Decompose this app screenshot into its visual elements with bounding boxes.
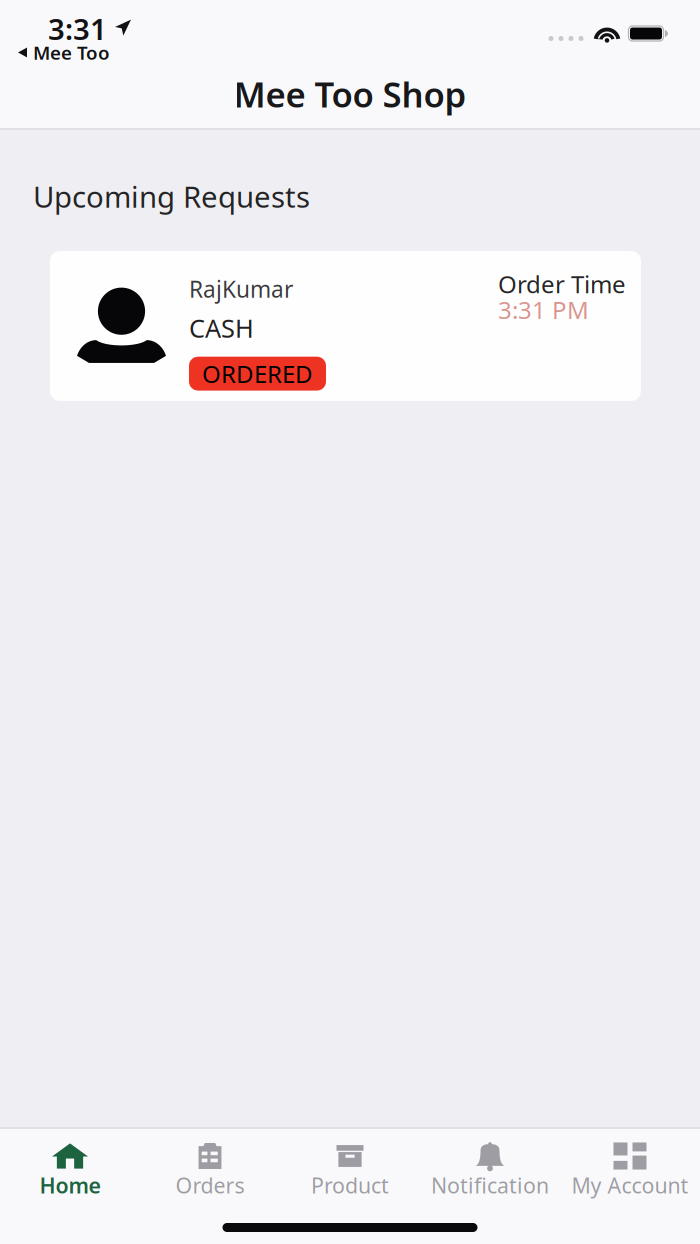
button[interactable]: Orders: [140, 1129, 280, 1209]
button[interactable]: Product: [280, 1129, 420, 1209]
button[interactable]: Notification: [420, 1129, 560, 1209]
staticText: CASH: [189, 311, 254, 345]
staticText: Notification: [431, 1171, 549, 1199]
staticText: Mee Too Shop: [233, 71, 466, 117]
button[interactable]: Home: [0, 1129, 140, 1209]
staticText: 3:31: [48, 9, 107, 48]
staticText: RajKumar: [189, 274, 293, 304]
button[interactable]: Mee Too: [0, 40, 110, 65]
staticText: Mee Too: [33, 40, 110, 65]
staticText: ORDERED: [202, 358, 313, 390]
staticText: Product: [311, 1171, 389, 1199]
staticText: Orders: [175, 1171, 244, 1199]
staticText: Order Time: [498, 268, 626, 300]
staticText: 3:31 PM: [498, 294, 589, 326]
staticText: Upcoming Requests: [33, 177, 310, 216]
button[interactable]: RajKumar: [50, 251, 641, 401]
staticText: Home: [39, 1171, 100, 1199]
button[interactable]: My Account: [560, 1129, 700, 1209]
staticText: My Account: [571, 1171, 688, 1199]
